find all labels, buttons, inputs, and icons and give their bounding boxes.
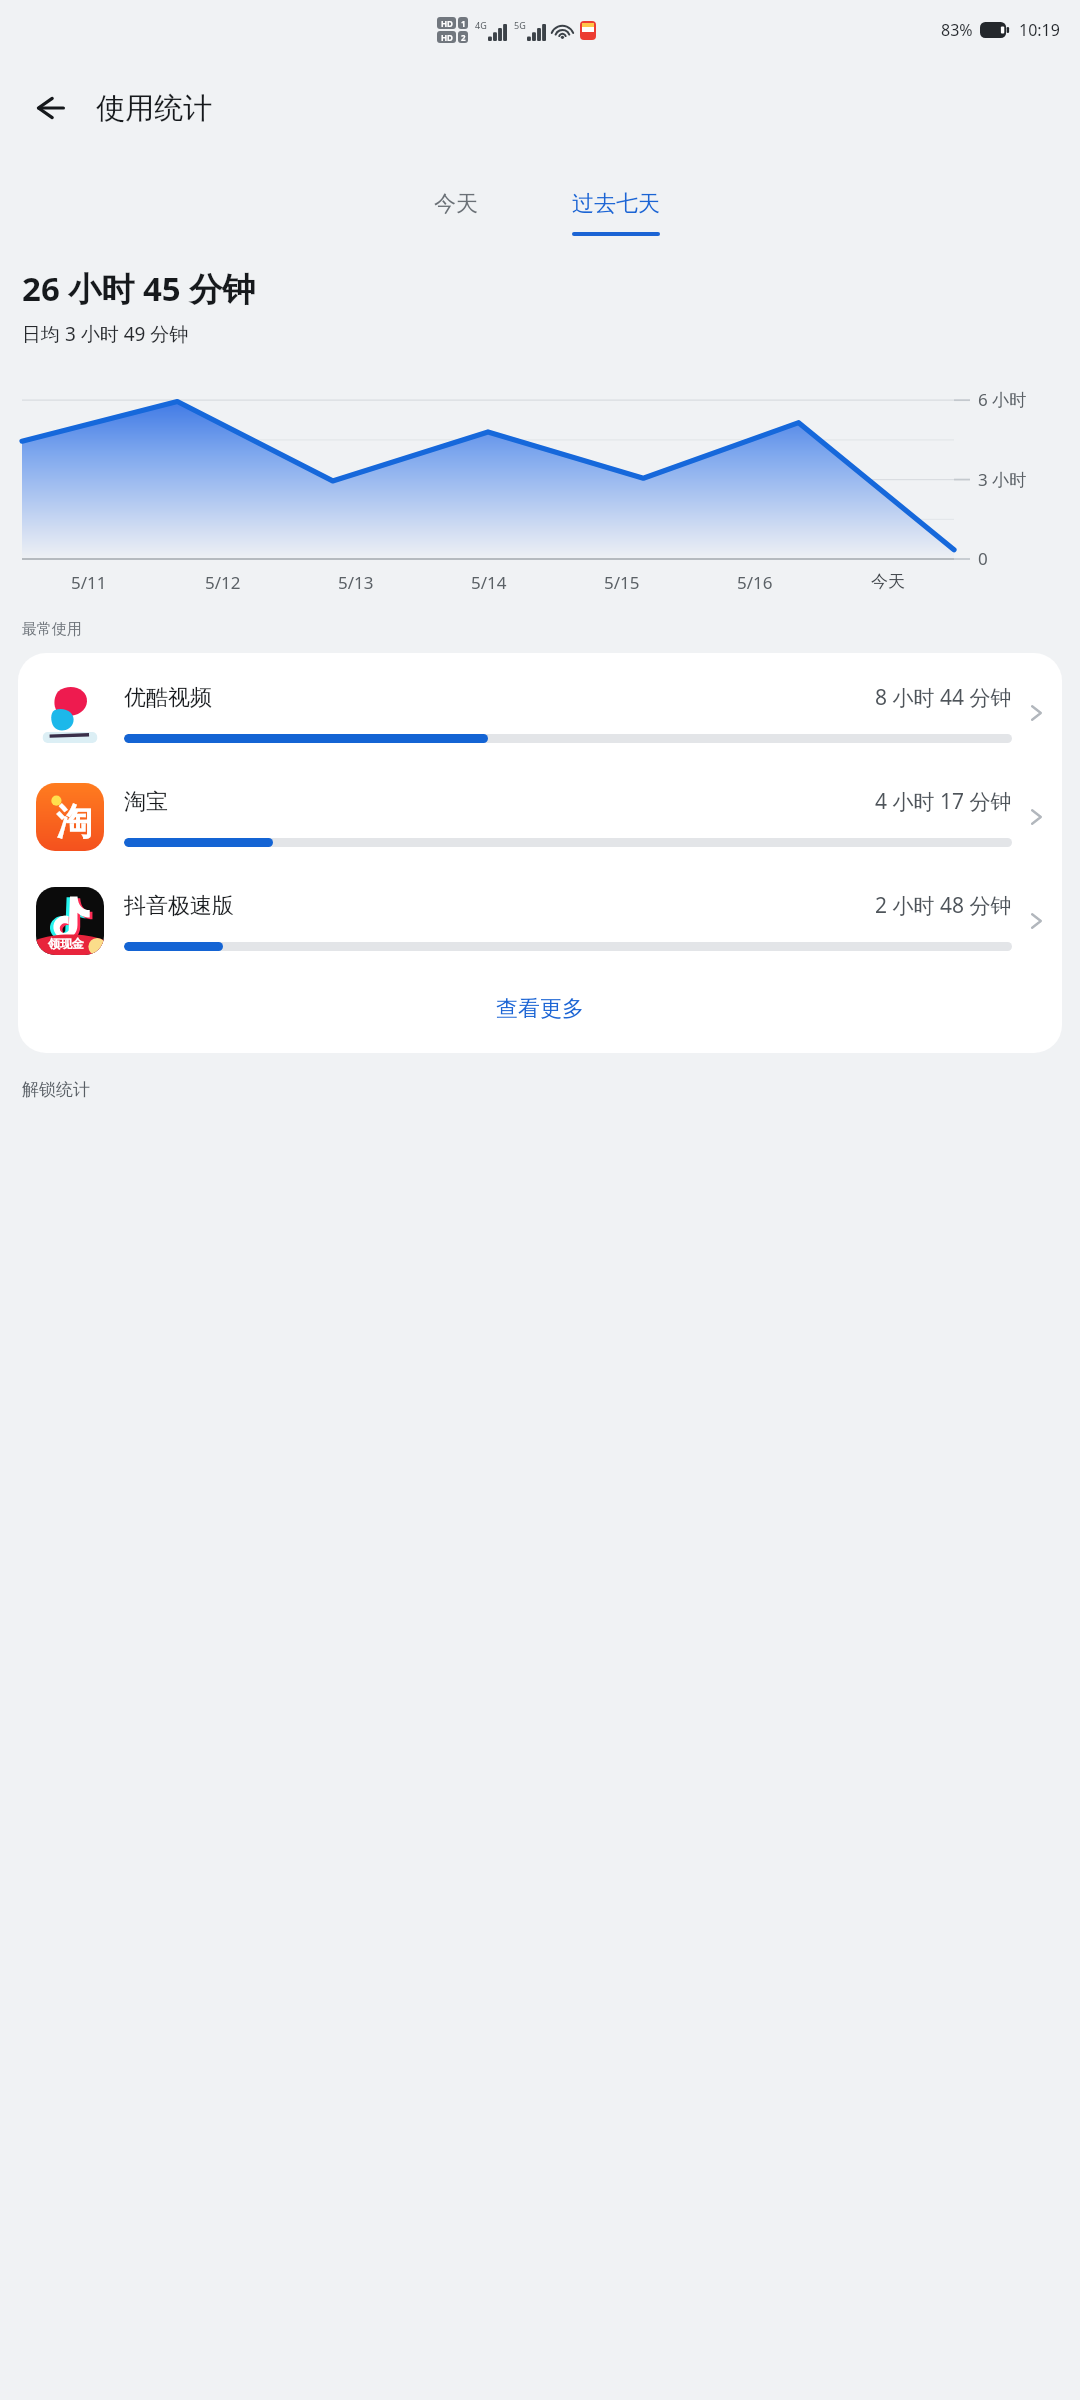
button[interactable]: 淘 xyxy=(18,765,1062,869)
staticText: 10:19 xyxy=(1019,19,1060,41)
button[interactable]: 领现金 xyxy=(18,869,1062,973)
button[interactable]: 优酷视频 xyxy=(18,661,1062,765)
staticText: 最常使用 xyxy=(22,620,82,639)
staticText: 领现金 xyxy=(48,936,84,951)
staticText: 5/15 xyxy=(604,571,640,594)
button[interactable]: 今天 xyxy=(408,182,504,226)
staticText: 2 xyxy=(461,32,466,43)
staticText: 1 xyxy=(461,18,466,29)
staticText: 过去七天 xyxy=(572,190,660,218)
staticText: 0 xyxy=(978,547,988,570)
staticText: 解锁统计 xyxy=(22,1079,90,1100)
staticText: 今天 xyxy=(871,571,905,592)
staticText: 淘 xyxy=(56,799,92,844)
staticText: 2 小时 48 分钟 xyxy=(875,891,1012,920)
staticText: 3 小时 xyxy=(978,468,1027,491)
button[interactable]: 返回 xyxy=(16,75,82,141)
staticText: 4 小时 17 分钟 xyxy=(875,787,1012,816)
staticText: 5/16 xyxy=(737,571,773,594)
staticText: 4G xyxy=(475,19,487,31)
staticText: 使用统计 xyxy=(96,90,212,127)
staticText: 淘宝 xyxy=(124,788,168,816)
button[interactable]: 查看更多 xyxy=(18,973,1062,1045)
staticText: 83% xyxy=(941,19,973,41)
staticText: 6 小时 xyxy=(978,388,1027,411)
staticText: 抖音极速版 xyxy=(124,892,234,920)
staticText: 日均 3 小时 49 分钟 xyxy=(22,321,189,347)
staticText: 5/14 xyxy=(471,571,507,594)
staticText: 5/11 xyxy=(71,571,107,594)
staticText: 26 小时 45 分钟 xyxy=(22,266,256,311)
staticText: 优酷视频 xyxy=(124,684,212,712)
staticText: HD xyxy=(441,32,453,43)
staticText: 今天 xyxy=(434,190,478,218)
staticText: 查看更多 xyxy=(496,995,584,1023)
staticText: 5/12 xyxy=(205,571,241,594)
staticText: HD xyxy=(441,18,453,29)
staticText: 5/13 xyxy=(338,571,374,594)
button[interactable]: 过去七天 xyxy=(560,182,672,236)
staticText: 8 小时 44 分钟 xyxy=(875,683,1012,712)
staticText: 5G xyxy=(514,19,526,31)
